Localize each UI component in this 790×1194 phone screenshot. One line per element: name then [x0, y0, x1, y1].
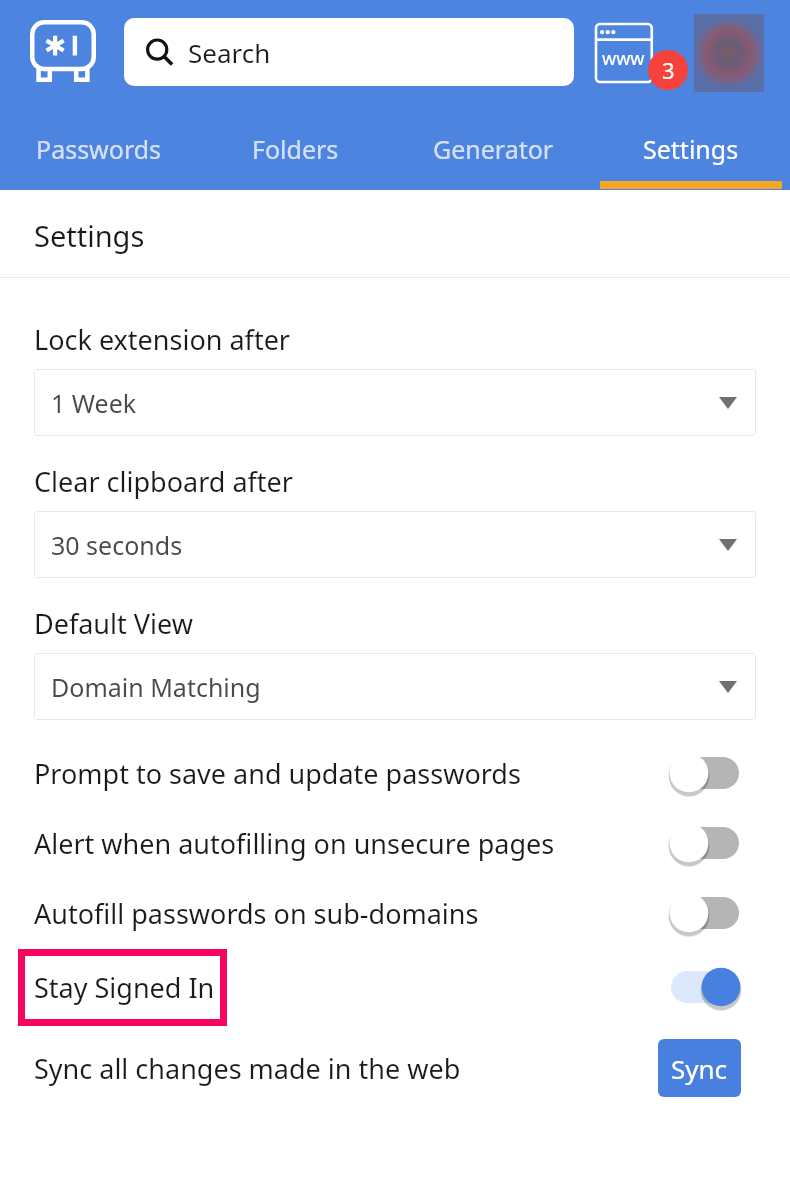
- staticText: Generator: [433, 132, 554, 166]
- button[interactable]: Search: [124, 18, 574, 86]
- button[interactable]: Passwords: [0, 118, 197, 190]
- button[interactable]: Vault logo: [30, 20, 96, 84]
- button[interactable]: Settings: [592, 118, 790, 190]
- button[interactable]: [668, 892, 742, 934]
- button[interactable]: Account avatar: [694, 14, 764, 92]
- staticText: Sync all changes made in the web: [34, 1050, 461, 1087]
- staticText: 30 seconds: [51, 528, 183, 562]
- button[interactable]: 30 seconds: [34, 511, 756, 578]
- staticText: Search: [188, 35, 271, 70]
- button[interactable]: Stay Signed In: [0, 948, 790, 1026]
- button[interactable]: Autofill passwords on sub-domains: [0, 878, 790, 948]
- button[interactable]: [668, 822, 742, 864]
- button[interactable]: Open websites: [594, 20, 668, 88]
- button[interactable]: Generator: [394, 118, 592, 190]
- staticText: Stay Signed In: [34, 969, 215, 1006]
- staticText: Lock extension after: [34, 321, 291, 358]
- staticText: www: [602, 46, 645, 71]
- staticText: Settings: [643, 132, 739, 166]
- staticText: Autofill passwords on sub-domains: [34, 895, 479, 932]
- button[interactable]: Prompt to save and update passwords: [0, 738, 790, 808]
- staticText: Sync: [671, 1051, 728, 1086]
- staticText: Passwords: [36, 132, 162, 166]
- staticText: Domain Matching: [51, 670, 261, 704]
- staticText: Clear clipboard after: [34, 463, 293, 500]
- staticText: Alert when autofilling on unsecure pages: [34, 825, 555, 862]
- staticText: Prompt to save and update passwords: [34, 755, 521, 792]
- button[interactable]: Alert when autofilling on unsecure pages: [0, 808, 790, 878]
- button[interactable]: 1 Week: [34, 369, 756, 436]
- button[interactable]: Folders: [197, 118, 394, 190]
- button[interactable]: Sync: [658, 1039, 741, 1097]
- button[interactable]: [668, 966, 742, 1008]
- staticText: Folders: [252, 132, 339, 166]
- button[interactable]: [668, 752, 742, 794]
- staticText: 1 Week: [51, 386, 137, 420]
- button[interactable]: Domain Matching: [34, 653, 756, 720]
- staticText: Default View: [34, 605, 193, 642]
- staticText: 3: [662, 55, 675, 85]
- staticText: Settings: [34, 216, 145, 255]
